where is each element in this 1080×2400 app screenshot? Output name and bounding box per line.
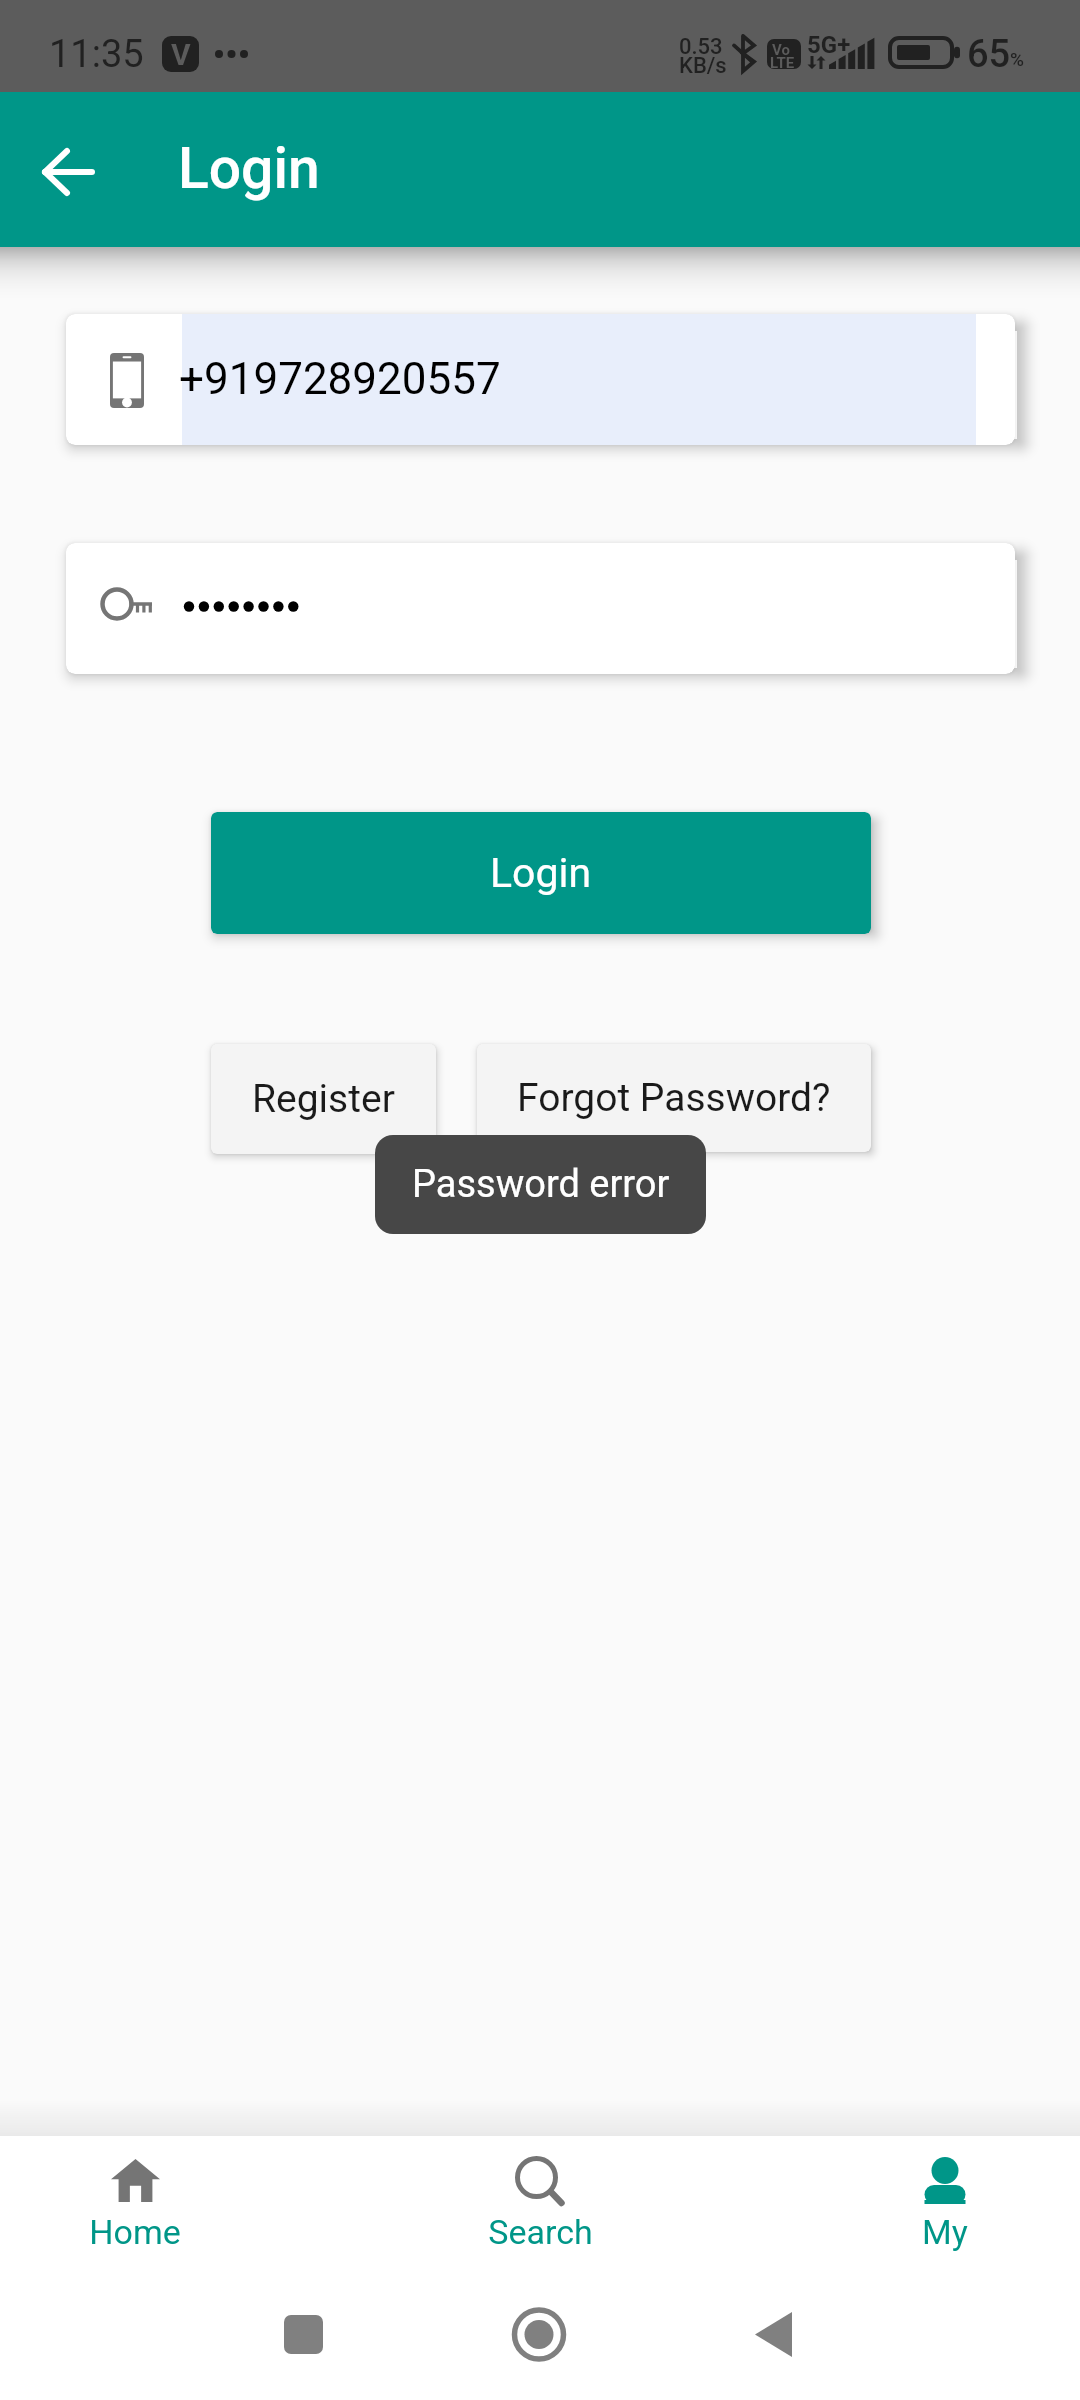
staticText: Login <box>490 849 592 897</box>
staticText: My <box>922 2212 968 2252</box>
staticText: V <box>171 37 191 72</box>
staticText: 11:35 <box>49 32 144 77</box>
staticText: KB/s <box>679 53 727 79</box>
staticText: Home <box>89 2212 181 2252</box>
button[interactable]: Recent apps <box>243 2295 363 2375</box>
button[interactable]: Login <box>211 812 871 934</box>
staticText: Vo <box>772 41 790 59</box>
staticText: 5G+ <box>807 31 851 59</box>
staticText: +919728920557 <box>179 353 501 405</box>
button[interactable]: Search <box>430 2136 650 2266</box>
button[interactable] <box>66 543 1015 674</box>
button[interactable]: +919728920557 <box>66 314 1015 445</box>
button[interactable]: Home <box>25 2136 245 2266</box>
staticText: Forgot Password? <box>517 1075 831 1121</box>
staticText: 0.53 <box>679 34 723 60</box>
button[interactable]: Register <box>211 1044 436 1154</box>
button[interactable]: Forgot Password? <box>477 1044 871 1152</box>
button[interactable]: Back <box>21 125 115 219</box>
staticText: 65 <box>967 32 1011 77</box>
staticText: LTE <box>770 54 795 69</box>
staticText: Register <box>252 1076 395 1122</box>
staticText: Search <box>488 2212 593 2252</box>
button[interactable]: My <box>835 2136 1055 2266</box>
staticText: Password error <box>412 1162 670 1207</box>
button[interactable]: Home <box>479 2295 599 2375</box>
staticText: % <box>1010 48 1024 70</box>
button[interactable]: Back <box>714 2295 834 2375</box>
staticText: Login <box>178 135 320 202</box>
